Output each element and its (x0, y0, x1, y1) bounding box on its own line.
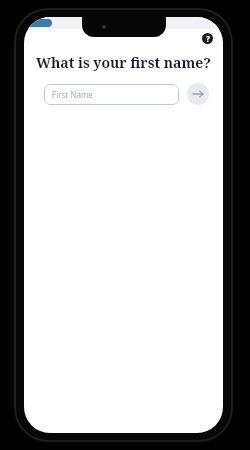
button[interactable]: Submit (187, 83, 209, 105)
staticText: First Name (52, 89, 93, 100)
button[interactable]: First Name (44, 84, 179, 105)
staticText: ? (206, 33, 210, 44)
button[interactable]: Help (198, 29, 216, 47)
staticText: What is your first name? (36, 53, 211, 72)
